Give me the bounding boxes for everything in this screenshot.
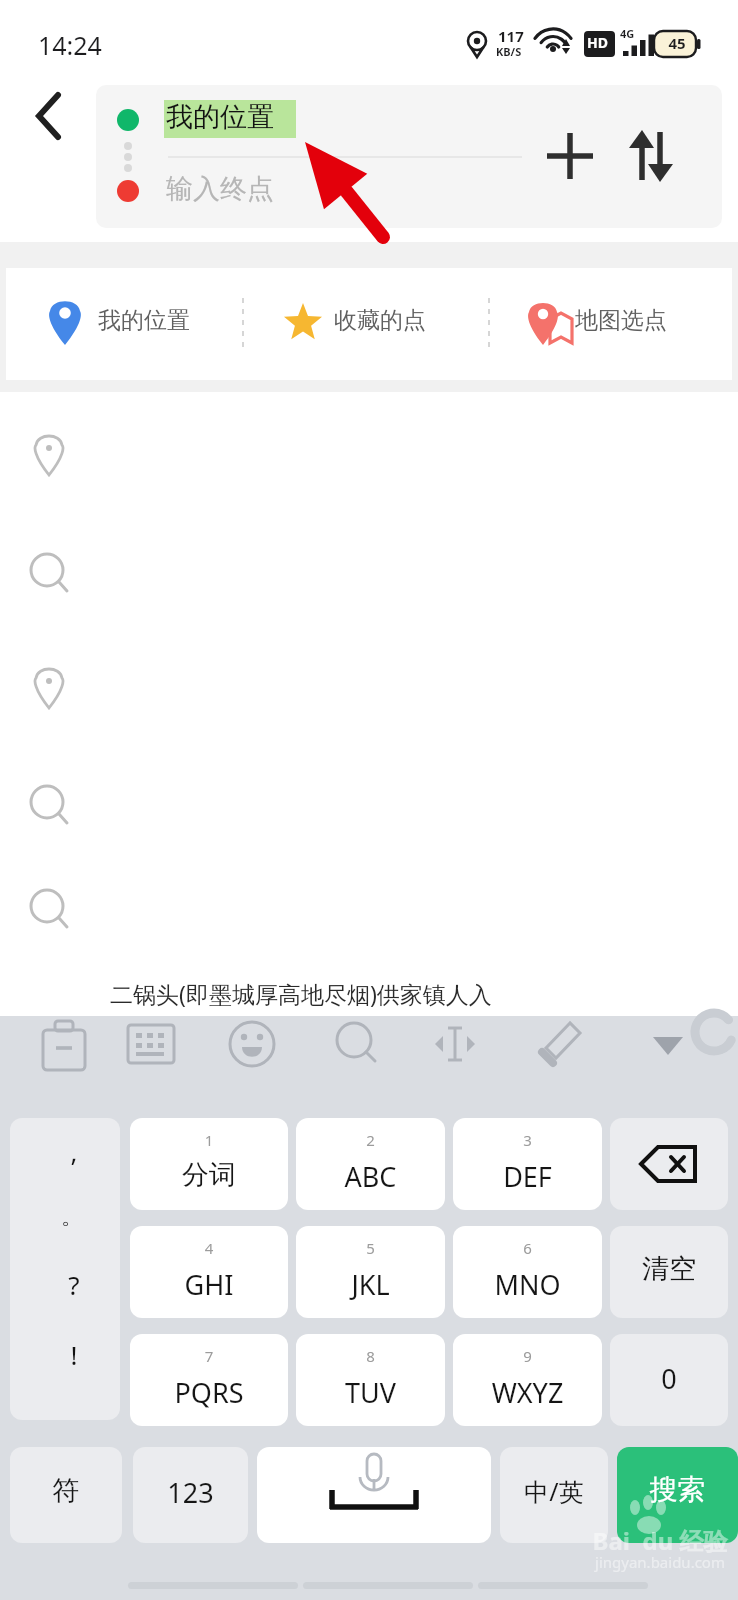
button[interactable]: Punctuation (10, 1118, 120, 1420)
button[interactable]: Choose on map (490, 268, 732, 380)
button[interactable]: Suggestion 1 (0, 420, 738, 500)
staticText: 二锅头(即墨城厚高地尽烟)供家镇人入 (110, 978, 670, 1021)
button[interactable]: Backspace (610, 1118, 728, 1210)
button[interactable]: Symbols (10, 1447, 122, 1543)
button[interactable]: 2 ABC (296, 1118, 445, 1210)
staticText: WXYZ (453, 1374, 602, 1423)
button[interactable]: Start location my location (96, 85, 526, 157)
button[interactable]: Space, voice input (257, 1447, 491, 1543)
staticText: 7 (130, 1346, 288, 1376)
staticText: 4G (620, 26, 650, 50)
staticText: JKL (296, 1266, 445, 1315)
button[interactable]: Chinese English toggle (500, 1447, 608, 1543)
staticText: 输入终点 (166, 172, 386, 221)
staticText: 3 (453, 1130, 602, 1160)
button[interactable]: Clear (610, 1226, 728, 1318)
button[interactable]: Suggestion 3 (0, 652, 738, 732)
button[interactable]: Favorite places (246, 268, 486, 380)
staticText: ABC (296, 1158, 445, 1207)
staticText: 。 (52, 1203, 92, 1244)
staticText: 9 (453, 1346, 602, 1376)
button[interactable]: Add waypoint (536, 120, 608, 192)
staticText: 清空 (610, 1252, 728, 1301)
button[interactable]: 9 WXYZ (453, 1334, 602, 1426)
staticText: 14:24 (38, 28, 178, 74)
button[interactable]: Search (617, 1447, 738, 1543)
button[interactable]: Suggestion 2 (0, 535, 738, 615)
button[interactable]: Suggestion 5 (0, 872, 738, 952)
button[interactable]: Suggestion 4 (0, 768, 738, 848)
button[interactable]: Back (10, 80, 90, 160)
staticText: TUV (296, 1374, 445, 1423)
staticText: 我的位置 (166, 100, 366, 149)
staticText: 分词 (130, 1158, 288, 1207)
button[interactable]: Enter destination (96, 157, 526, 228)
staticText: GHI (130, 1266, 288, 1315)
button[interactable]: 1 分词 (130, 1118, 288, 1210)
staticText: 符 (10, 1474, 122, 1523)
staticText: 搜索 (617, 1472, 738, 1523)
button[interactable]: Numbers (133, 1447, 248, 1543)
staticText: ? (54, 1267, 94, 1315)
button[interactable]: Swap start and destination (616, 120, 688, 192)
staticText: 地图选点 (575, 306, 735, 349)
button[interactable]: 0 (610, 1334, 728, 1426)
staticText: Bai du 经验 (570, 1524, 738, 1568)
staticText: 117 (498, 26, 558, 56)
staticText: 0 (610, 1360, 728, 1409)
staticText: PQRS (130, 1374, 288, 1423)
button[interactable]: 8 TUV (296, 1334, 445, 1426)
staticText: DEF (453, 1158, 602, 1207)
staticText: 6 (453, 1238, 602, 1268)
staticText: 4 (130, 1238, 288, 1268)
button[interactable]: 3 DEF (453, 1118, 602, 1210)
staticText: 8 (296, 1346, 445, 1376)
staticText: HD (587, 33, 617, 61)
staticText: 收藏的点 (334, 306, 494, 349)
button[interactable]: 6 MNO (453, 1226, 602, 1318)
staticText: ! (54, 1337, 94, 1385)
staticText: , (54, 1134, 94, 1182)
staticText: 1 (130, 1130, 288, 1160)
staticText: KB/S (496, 44, 556, 68)
staticText: 我的位置 (98, 306, 258, 349)
staticText: MNO (453, 1266, 602, 1315)
button[interactable]: 7 PQRS (130, 1334, 288, 1426)
staticText: 2 (296, 1130, 445, 1160)
staticText: 45 (662, 33, 692, 63)
staticText: jingyan.baidu.com (570, 1552, 738, 1582)
button[interactable]: 5 JKL (296, 1226, 445, 1318)
staticText: 123 (133, 1474, 248, 1523)
staticText: 5 (296, 1238, 445, 1268)
staticText: 中/英 (500, 1474, 608, 1520)
button[interactable]: My location (6, 268, 246, 380)
button[interactable]: 4 GHI (130, 1226, 288, 1318)
